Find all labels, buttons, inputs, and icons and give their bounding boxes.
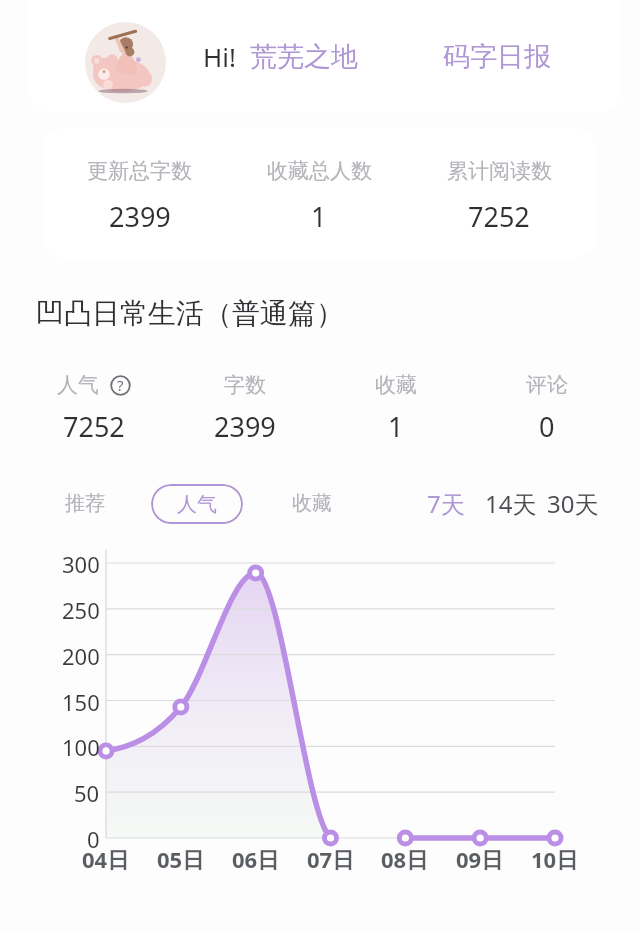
staticText: 7252 <box>63 408 125 445</box>
staticText: 0 <box>539 408 555 445</box>
button[interactable] <box>30 0 620 113</box>
staticText: 2399 <box>214 408 276 445</box>
staticText: 250 <box>62 595 100 623</box>
staticText: 05日 <box>157 844 205 874</box>
staticText: 人气 <box>57 372 99 398</box>
staticText: 收藏总人数 <box>267 158 372 184</box>
staticText: 06日 <box>232 844 280 874</box>
button[interactable]: 推荐 <box>65 491 105 516</box>
other: Help <box>110 375 131 396</box>
button[interactable]: 收藏总人数 <box>229 158 409 235</box>
staticText: 08日 <box>381 844 429 874</box>
staticText: 收藏 <box>375 372 417 398</box>
staticText: 2399 <box>109 198 171 235</box>
staticText: 凹凸日常生活（普通篇） <box>36 296 344 331</box>
staticText: ? <box>117 375 124 395</box>
staticText: 荒芜之地 <box>250 40 358 74</box>
staticText: 1 <box>388 408 404 445</box>
button[interactable]: 人气 <box>151 484 243 524</box>
button[interactable]: 14天 <box>485 487 537 520</box>
staticText: 04日 <box>82 844 130 874</box>
staticText: 1 <box>311 198 327 235</box>
staticText: 更新总字数 <box>87 158 192 184</box>
staticText: Hi! <box>203 39 236 74</box>
button[interactable]: 更新总字数 <box>50 158 229 235</box>
button[interactable]: 收藏 <box>320 372 471 445</box>
button[interactable]: 30天 <box>547 487 599 520</box>
staticText: 字数 <box>224 372 266 398</box>
staticText: 人气 <box>177 492 217 517</box>
button[interactable]: 收藏 <box>292 491 332 516</box>
staticText: 评论 <box>526 372 568 398</box>
staticText: 100 <box>62 732 100 760</box>
button[interactable]: 人气 <box>19 372 169 445</box>
staticText: 300 <box>62 549 100 577</box>
staticText: 09日 <box>456 844 504 874</box>
staticText: 10日 <box>531 844 579 874</box>
button[interactable]: 字数 <box>169 372 320 445</box>
button[interactable]: 累计阅读数 <box>409 158 589 235</box>
staticText: 07日 <box>307 844 355 874</box>
staticText: 7252 <box>468 198 530 235</box>
staticText: 200 <box>62 641 100 669</box>
staticText: 150 <box>62 687 100 715</box>
staticText: 累计阅读数 <box>447 158 552 184</box>
button[interactable]: 码字日报 <box>443 40 551 74</box>
staticText: 50 <box>74 778 100 806</box>
button[interactable]: 7天 <box>427 487 465 520</box>
staticText: 0 <box>87 824 100 852</box>
button[interactable]: 评论 <box>471 372 622 445</box>
